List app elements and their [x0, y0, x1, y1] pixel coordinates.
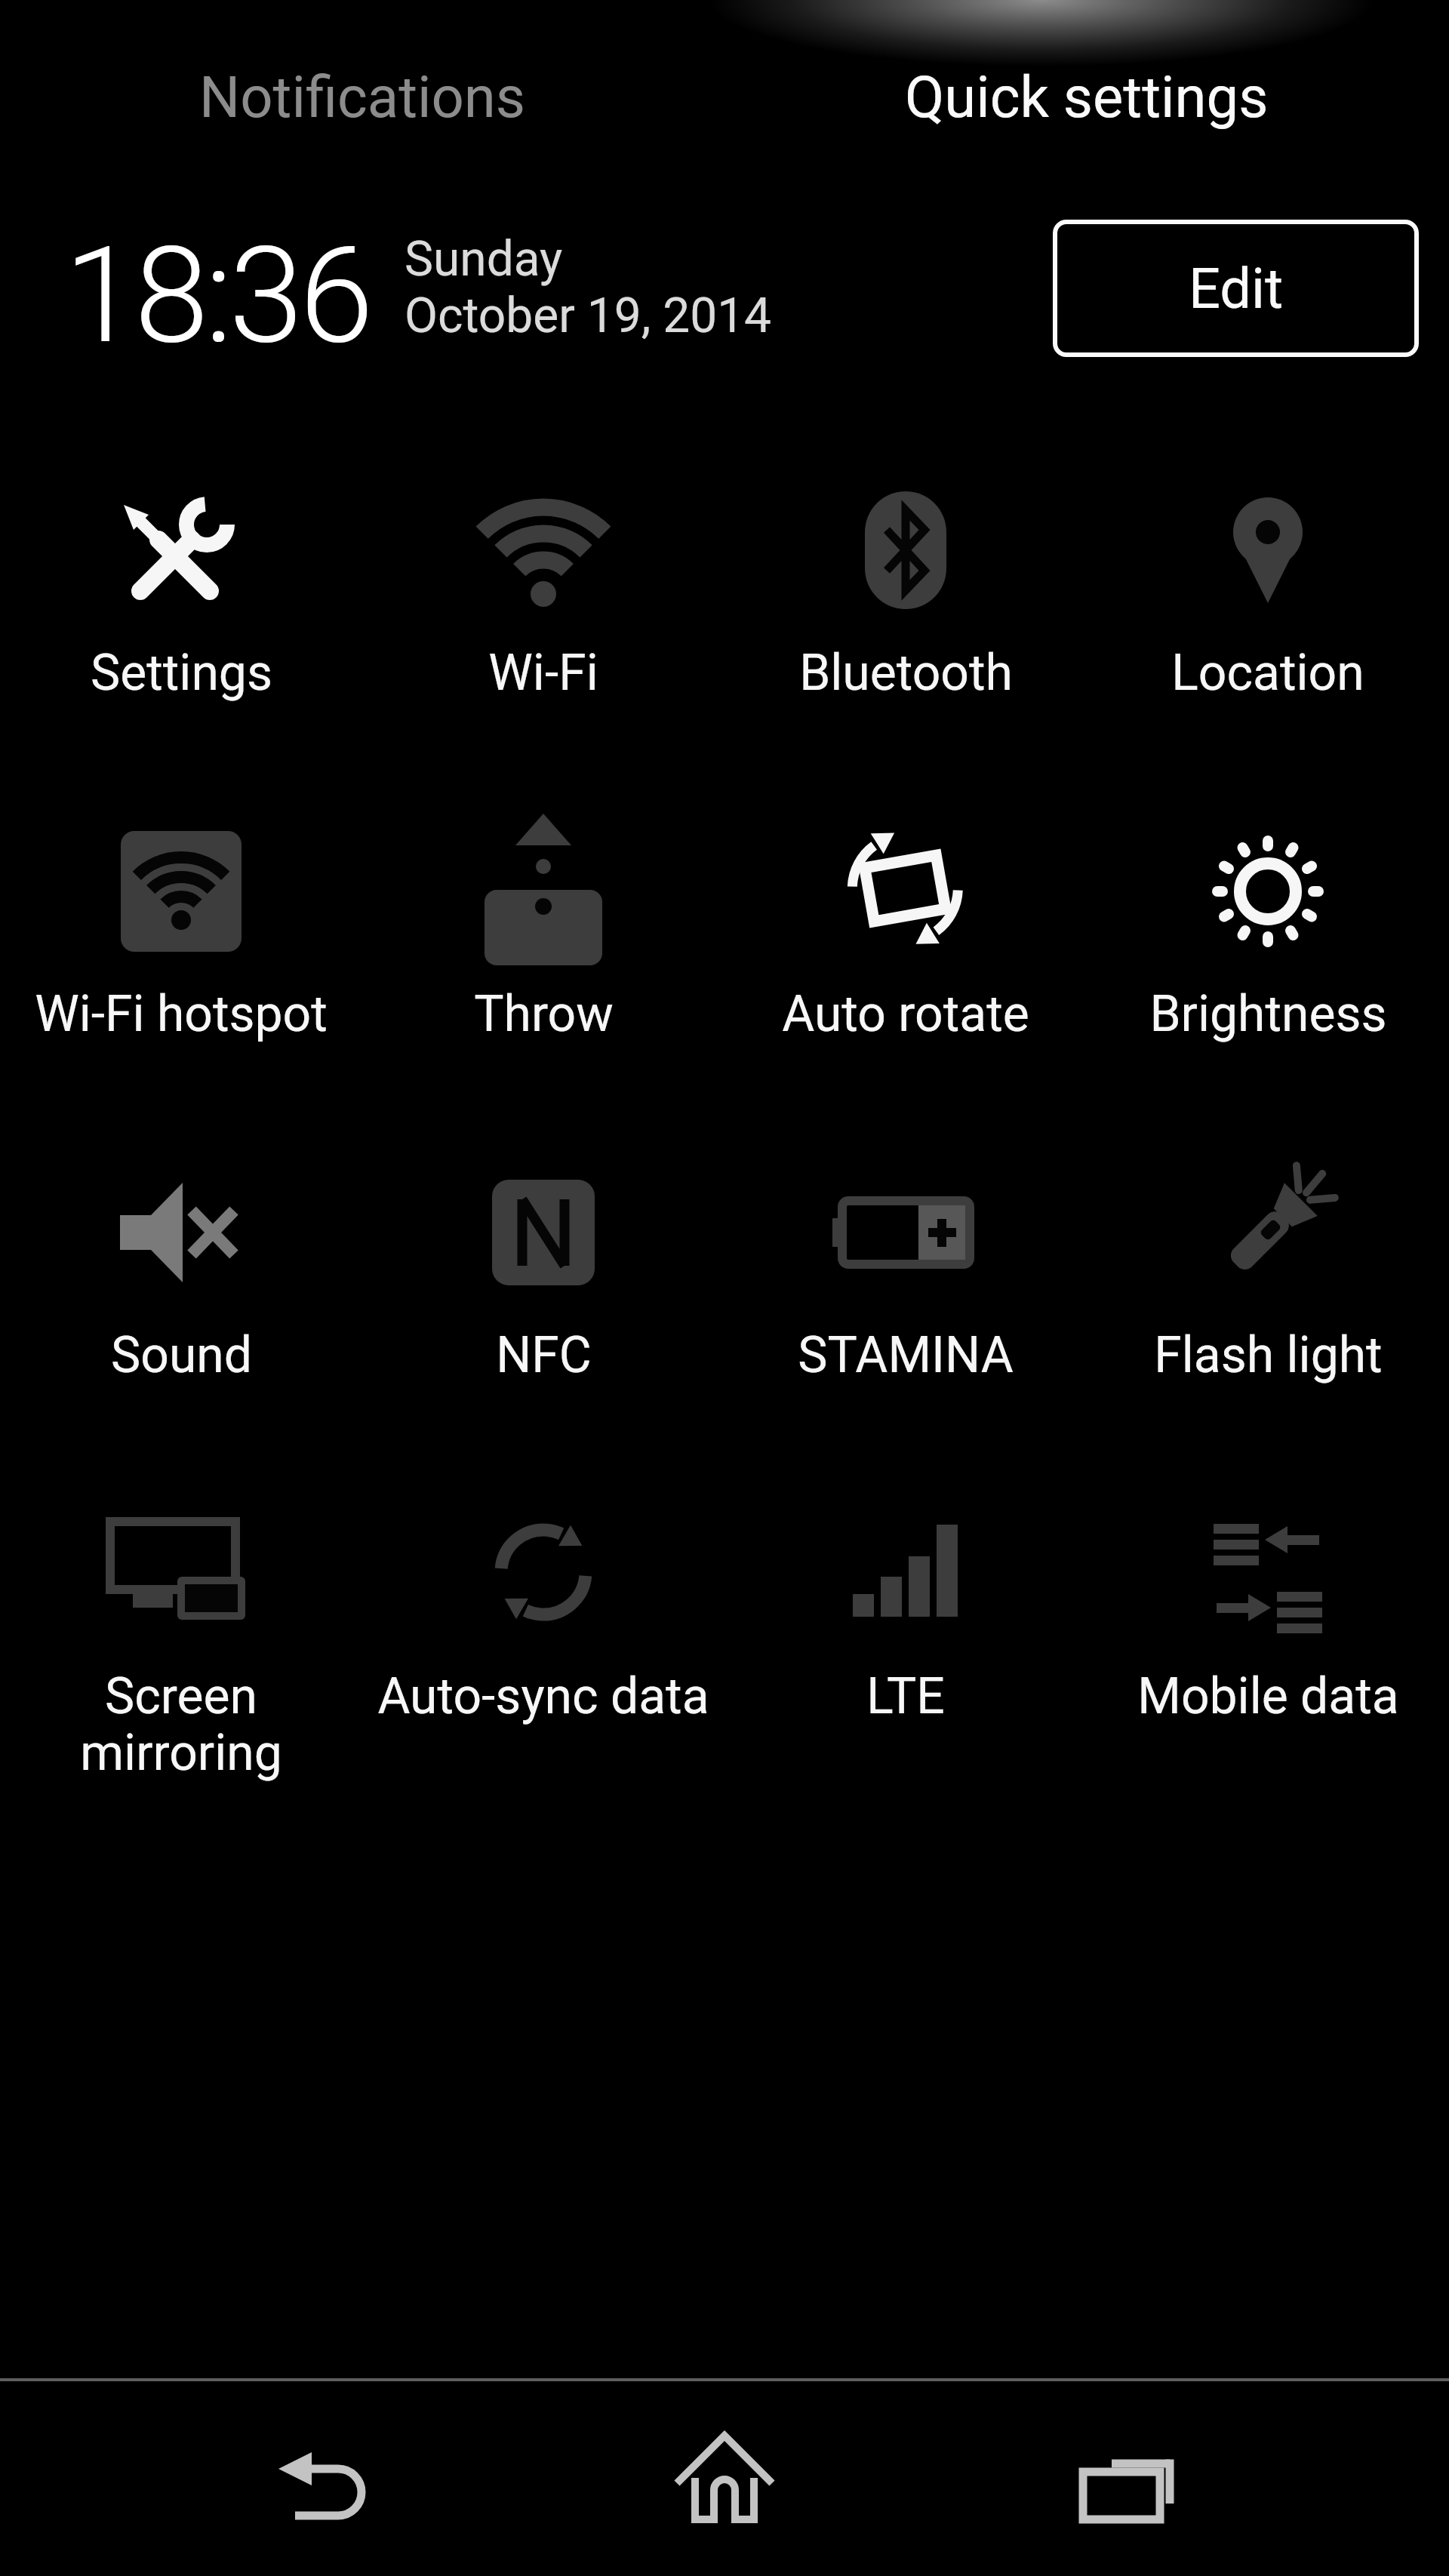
button[interactable]: Notifications: [0, 44, 724, 149]
button[interactable]: Location: [1087, 380, 1449, 721]
button[interactable]: Auto rotate: [724, 721, 1087, 1062]
button[interactable]: Bluetooth: [724, 380, 1087, 721]
button[interactable]: NFC: [362, 1062, 724, 1403]
staticText: Quick settings: [905, 63, 1269, 131]
staticText: Brightness: [1149, 985, 1387, 1043]
staticText: Sunday October 19, 2014: [405, 231, 772, 343]
staticText: Throw: [474, 985, 614, 1043]
button[interactable]: Throw: [362, 721, 724, 1062]
staticText: Screen mirroring: [80, 1667, 282, 1782]
button[interactable]: Sound: [0, 1062, 362, 1403]
button[interactable]: Screen mirroring: [0, 1403, 362, 1744]
button[interactable]: [634, 2409, 815, 2545]
button[interactable]: Edit: [1053, 220, 1419, 357]
staticText: Settings: [91, 644, 272, 702]
button[interactable]: Settings: [0, 380, 362, 721]
staticText: Mobile data: [1137, 1667, 1399, 1725]
staticText: Notifications: [199, 63, 526, 131]
staticText: 18:36: [64, 217, 370, 374]
staticText: Location: [1171, 644, 1364, 702]
staticText: Bluetooth: [799, 644, 1013, 702]
staticText: Wi-Fi: [488, 644, 598, 702]
button[interactable]: STAMINA: [724, 1062, 1087, 1403]
button[interactable]: Mobile data: [1087, 1403, 1449, 1744]
button[interactable]: LTE: [724, 1403, 1087, 1744]
staticText: Sound: [111, 1326, 252, 1384]
staticText: Auto-sync data: [377, 1667, 709, 1725]
staticText: LTE: [866, 1667, 945, 1725]
button[interactable]: Quick settings: [724, 44, 1449, 149]
button[interactable]: Auto-sync data: [362, 1403, 724, 1744]
button[interactable]: [1037, 2421, 1218, 2557]
staticText: Wi-Fi hotspot: [35, 985, 328, 1043]
staticText: Flash light: [1154, 1326, 1383, 1384]
button[interactable]: [240, 2424, 421, 2560]
button[interactable]: Brightness: [1087, 721, 1449, 1062]
staticText: Edit: [1189, 256, 1284, 322]
button[interactable]: Flash light: [1087, 1062, 1449, 1403]
button[interactable]: Wi-Fi hotspot: [0, 721, 362, 1062]
staticText: STAMINA: [798, 1326, 1014, 1384]
staticText: NFC: [496, 1326, 592, 1384]
staticText: Auto rotate: [782, 985, 1029, 1043]
button[interactable]: Wi-Fi: [362, 380, 724, 721]
